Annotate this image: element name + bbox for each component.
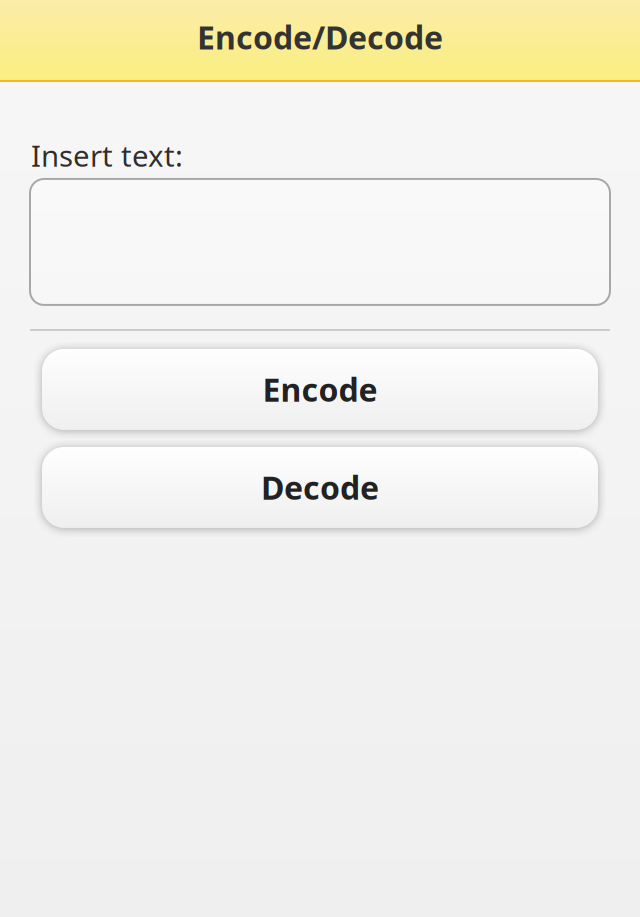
button[interactable]: Encode <box>42 349 598 430</box>
staticText: Encode/Decode <box>197 16 443 58</box>
staticText: Insert text: <box>31 136 183 175</box>
staticText: Encode <box>262 368 377 411</box>
button[interactable]: Insert text <box>30 179 610 305</box>
button[interactable]: Decode <box>42 447 598 528</box>
staticText: Decode <box>261 466 379 509</box>
